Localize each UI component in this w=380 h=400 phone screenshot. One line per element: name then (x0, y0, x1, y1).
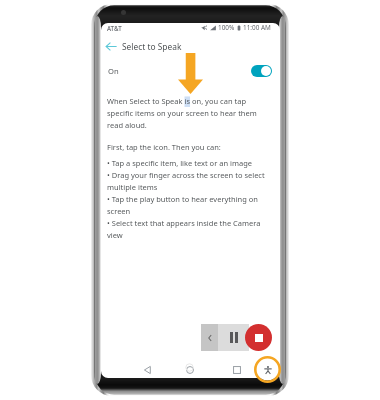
button[interactable]: On (101, 56, 280, 85)
staticText: AT&T (107, 24, 122, 32)
staticText: When Select to Speak is on, you can tap … (107, 96, 274, 130)
staticText: • Tap a specific item, like text or an i… (107, 158, 274, 240)
button[interactable]: Stop (245, 324, 272, 351)
button[interactable]: Pause (218, 324, 249, 351)
button[interactable]: Back (138, 361, 156, 378)
button[interactable]: Select to Speak (254, 356, 281, 383)
button[interactable]: Recents (228, 361, 246, 378)
staticText: 11:00 AM (243, 23, 271, 32)
staticText: Select to Speak (122, 41, 182, 52)
button[interactable]: Back (103, 39, 118, 54)
button[interactable]: Home (181, 361, 199, 378)
button[interactable]: Previous (201, 324, 218, 351)
staticText: On (108, 66, 119, 76)
staticText: 100% (218, 23, 235, 32)
staticText: First, tap the icon. Then you can: (107, 142, 221, 152)
